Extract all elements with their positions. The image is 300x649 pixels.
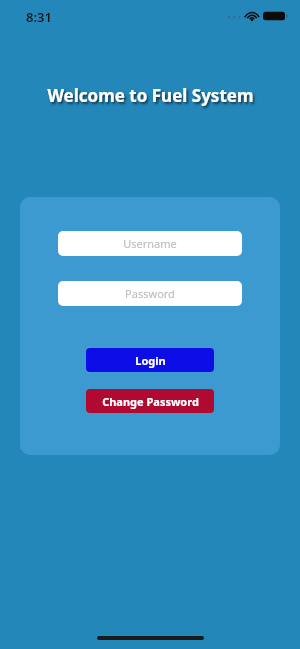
staticText: Welcome to Fuel System	[47, 84, 254, 107]
staticText: Change Password	[102, 394, 199, 409]
staticText: Username	[123, 236, 177, 251]
staticText: Login	[135, 353, 166, 368]
button[interactable]: Username	[58, 231, 242, 256]
button[interactable]: Login	[86, 348, 214, 372]
staticText: Password	[125, 286, 175, 301]
staticText: 8:31	[26, 8, 52, 26]
button[interactable]: Password	[58, 281, 242, 306]
button[interactable]: Change Password	[86, 389, 214, 413]
